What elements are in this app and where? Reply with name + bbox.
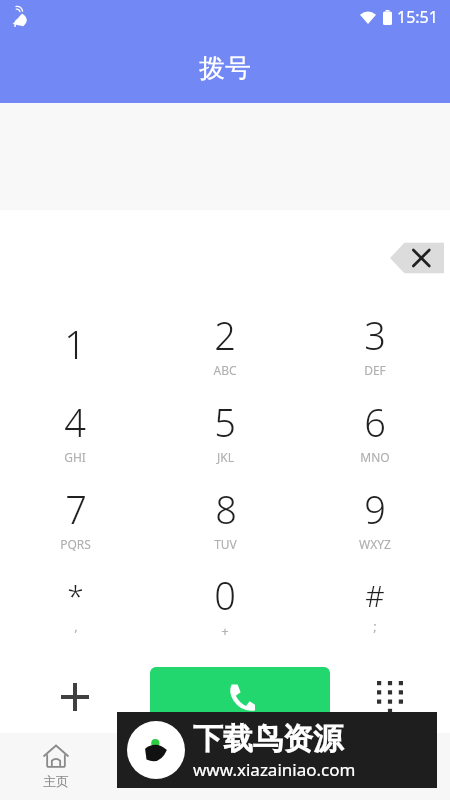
staticText: 7 — [65, 483, 87, 535]
button[interactable]: 1 — [0, 300, 150, 387]
staticText: + — [221, 622, 229, 640]
button[interactable]: 6 — [300, 387, 450, 474]
staticText: DEF — [364, 362, 386, 378]
staticText: 4 — [64, 396, 86, 448]
staticText: GHI — [64, 449, 86, 465]
button[interactable]: 7 — [0, 474, 150, 561]
button[interactable]: 9 — [300, 474, 450, 561]
staticText: TUV — [214, 536, 237, 552]
staticText: 6 — [364, 396, 386, 448]
staticText: 0 — [214, 569, 236, 621]
button[interactable]: * — [0, 561, 150, 648]
staticText: 主页 — [43, 773, 69, 789]
staticText: 3 — [364, 309, 386, 361]
button[interactable]: 5 — [150, 387, 300, 474]
staticText: JKL — [217, 449, 234, 465]
staticText: 拨号 — [155, 773, 181, 789]
staticText: ABC — [213, 362, 237, 378]
button[interactable]: 主页 — [0, 733, 112, 800]
button[interactable]: 信息 — [337, 733, 450, 800]
staticText: 15:51 — [397, 6, 438, 28]
button[interactable]: 8 — [150, 474, 300, 561]
staticText: 信息 — [381, 773, 407, 789]
button[interactable]: Dialpad — [330, 661, 450, 733]
staticText: , — [74, 617, 78, 635]
staticText: 2 — [214, 309, 236, 361]
staticText: 下载鸟资源 — [193, 720, 343, 758]
staticText: WXYZ — [359, 536, 391, 552]
button[interactable]: Call — [150, 667, 330, 727]
button[interactable]: 2 — [150, 300, 300, 387]
staticText: 拨号 — [199, 52, 251, 85]
staticText: 8 — [215, 483, 237, 535]
staticText: 联系人 — [261, 773, 300, 789]
button[interactable]: # — [300, 561, 450, 648]
staticText: www.xiazainiao.com — [193, 758, 356, 781]
staticText: * — [67, 575, 84, 616]
staticText: MNO — [360, 449, 390, 465]
button[interactable]: 4 — [0, 387, 150, 474]
button[interactable]: 0 — [150, 561, 300, 648]
staticText: PQRS — [60, 536, 91, 552]
staticText: ; — [373, 617, 377, 635]
staticText: 1 — [64, 318, 86, 370]
staticText: 9 — [364, 483, 386, 535]
button[interactable]: 3 — [300, 300, 450, 387]
staticText: # — [365, 575, 385, 616]
button[interactable]: Delete — [390, 238, 444, 278]
button[interactable]: 拨号 — [112, 733, 224, 800]
button[interactable]: 联系人 — [224, 733, 337, 800]
button[interactable]: Add contact — [0, 661, 150, 733]
staticText: 5 — [214, 396, 236, 448]
